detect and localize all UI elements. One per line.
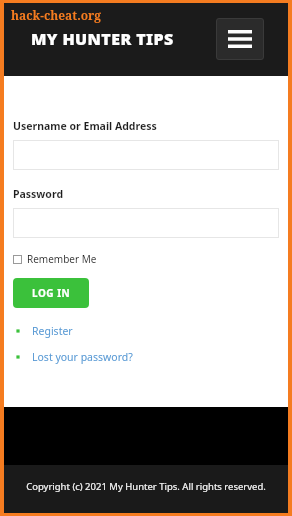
- button[interactable]: LOG IN: [13, 278, 89, 308]
- button[interactable]: Lost your password?: [13, 350, 133, 364]
- staticText: Remember Me: [27, 252, 97, 266]
- button[interactable]: Register: [13, 324, 73, 338]
- staticText: Register: [32, 324, 73, 338]
- staticText: Password: [13, 187, 64, 201]
- staticText: hack-cheat.org: [11, 7, 102, 23]
- staticText: LOG IN: [32, 286, 71, 300]
- staticText: MY HUNTER TIPS: [31, 28, 174, 50]
- button[interactable]: [13, 140, 279, 170]
- button[interactable]: [13, 208, 279, 238]
- staticText: Lost your password?: [32, 350, 133, 364]
- button[interactable]: Remember Me: [13, 252, 97, 266]
- staticText: Copyright (c) 2021 My Hunter Tips. All r…: [26, 480, 266, 493]
- staticText: Username or Email Address: [13, 119, 157, 133]
- button[interactable]: Menu: [216, 18, 264, 60]
